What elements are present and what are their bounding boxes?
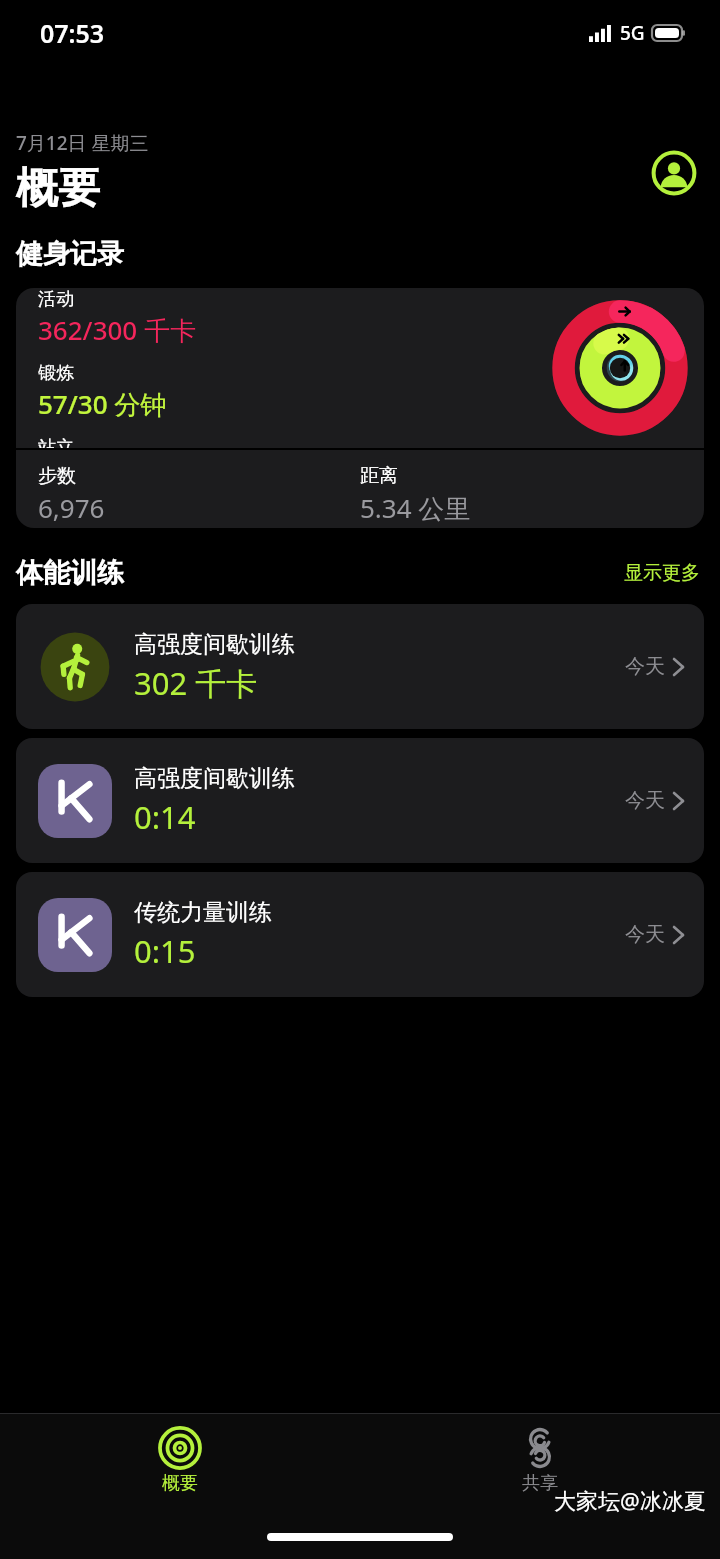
staticText: 共享 [522, 1472, 558, 1495]
staticText: 07:53 [40, 16, 105, 50]
staticText: 概要 [162, 1472, 198, 1495]
staticText: 今天 [625, 922, 665, 947]
staticText: 健身记录 [16, 237, 124, 271]
staticText: 302 千卡 [134, 662, 258, 704]
staticText: 传统力量训练 [134, 898, 272, 927]
button[interactable]: 显示更多 [620, 557, 704, 589]
button[interactable]: Profile [648, 147, 700, 199]
staticText: 5.34 公里 [360, 490, 471, 526]
staticText: 大家坛@冰冰夏 [554, 1485, 706, 1515]
staticText: 0:15 [134, 930, 196, 972]
staticText: 362/300 千卡 [38, 312, 197, 348]
button[interactable]: 共享 [360, 1414, 720, 1495]
staticText: 站立 [38, 436, 74, 448]
staticText: 57/30 分钟 [38, 386, 167, 422]
button[interactable]: 传统力量训练 [16, 872, 704, 997]
button[interactable]: 高强度间歇训练 [16, 604, 704, 729]
staticText: 概要 [16, 162, 100, 215]
staticText: 6,976 [38, 490, 105, 525]
staticText: 5G [620, 20, 645, 46]
staticText: 高强度间歇训练 [134, 630, 295, 659]
button[interactable]: 高强度间歇训练 [16, 738, 704, 863]
staticText: 今天 [625, 788, 665, 813]
staticText: 锻炼 [38, 362, 74, 385]
staticText: 体能训练 [16, 556, 124, 590]
staticText: 步数 [38, 464, 76, 488]
staticText: 0:14 [134, 796, 196, 838]
button[interactable]: 概要 [0, 1414, 360, 1495]
staticText: 活动 [38, 288, 74, 311]
staticText: 7月12日 星期三 [16, 130, 149, 156]
staticText: 距离 [360, 464, 398, 488]
staticText: 高强度间歇训练 [134, 764, 295, 793]
staticText: 今天 [625, 654, 665, 679]
staticText: 显示更多 [624, 561, 700, 585]
button[interactable]: 活动 [16, 288, 704, 528]
